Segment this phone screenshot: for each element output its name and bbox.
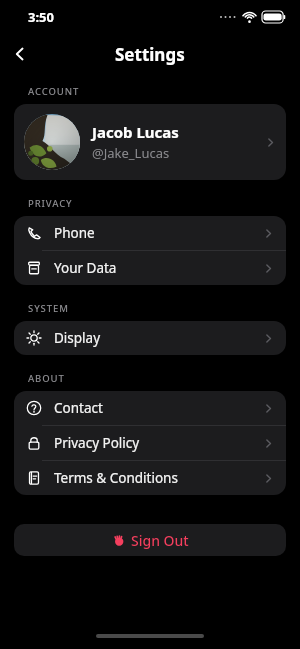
staticText: Contact [54,399,103,417]
staticText: PRIVACY [28,197,73,210]
staticText: ACCOUNT [28,85,80,98]
button[interactable]: Back [0,34,40,74]
button[interactable]: Contact [14,391,286,425]
staticText: Display [54,329,101,347]
button[interactable]: Sign Out [14,524,286,556]
staticText: Terms & Conditions [54,469,178,487]
button[interactable]: Display [14,321,286,355]
staticText: 3:50 [28,8,54,26]
button[interactable]: Jacob Lucas [14,104,286,180]
staticText: Settings [115,43,185,66]
button[interactable]: Terms & Conditions [14,461,286,495]
staticText: Jacob Lucas [92,122,179,142]
staticText: Privacy Policy [54,434,140,452]
button[interactable]: Your Data [14,251,286,285]
staticText: Sign Out [131,531,189,550]
staticText: Your Data [54,259,117,277]
staticText: SYSTEM [28,302,69,315]
staticText: Phone [54,224,95,242]
button[interactable]: Privacy Policy [14,426,286,460]
button[interactable]: Phone [14,216,286,250]
staticText: ABOUT [28,372,65,385]
staticText: @Jake_Lucas [92,144,170,162]
